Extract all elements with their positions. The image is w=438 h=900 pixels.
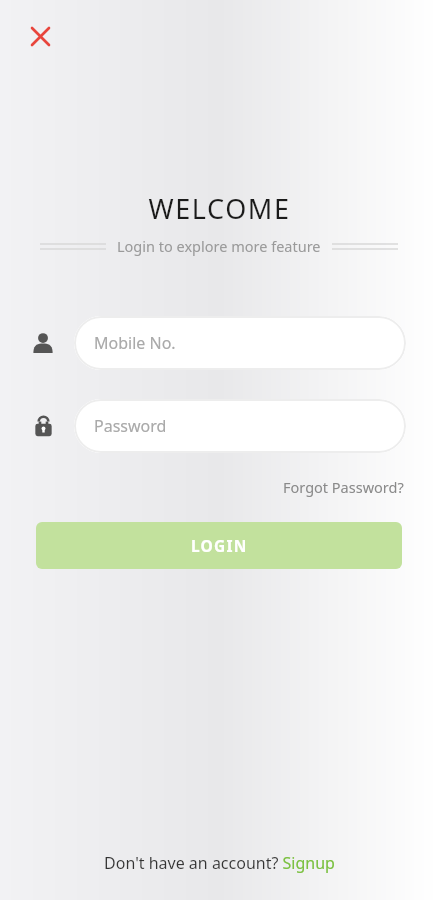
- button[interactable]: Forgot Password?: [273, 475, 438, 499]
- staticText: Mobile No.: [94, 332, 176, 354]
- button[interactable]: LOGIN: [36, 522, 402, 569]
- staticText: LOGIN: [191, 535, 248, 556]
- button[interactable]: Password: [74, 399, 406, 453]
- button[interactable]: Close: [22, 18, 58, 54]
- staticText: WELCOME: [148, 190, 291, 227]
- button[interactable]: Don't have an account? Signup: [90, 846, 349, 880]
- staticText: Password: [94, 415, 167, 437]
- staticText: Forgot Password?: [283, 477, 404, 497]
- staticText: Login to explore more feature: [117, 236, 321, 256]
- button[interactable]: Mobile No.: [74, 316, 406, 370]
- staticText: Don't have an account? Signup: [104, 852, 335, 874]
